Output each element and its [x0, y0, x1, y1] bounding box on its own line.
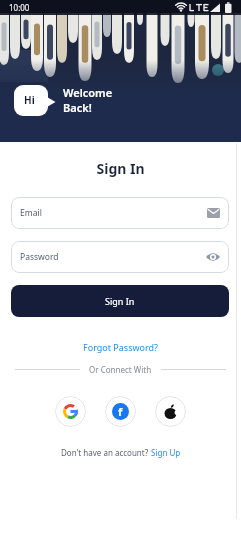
- button[interactable]: [55, 396, 86, 427]
- button[interactable]: f: [105, 396, 136, 427]
- staticText: 10:00: [9, 2, 30, 13]
- button[interactable]: Forgot Password?: [83, 341, 158, 353]
- staticText: Hi: [24, 93, 35, 107]
- button[interactable]: Sign In: [11, 285, 229, 317]
- staticText: Sign In: [105, 295, 135, 307]
- button[interactable]: Password: [11, 241, 229, 273]
- staticText: Or Connect With: [89, 364, 152, 375]
- staticText: Back!: [63, 100, 92, 115]
- button[interactable]: Sign Up: [151, 447, 181, 458]
- staticText: Welcome: [63, 85, 113, 100]
- staticText: f: [118, 404, 123, 419]
- staticText: Password: [20, 251, 59, 263]
- staticText: Don't have an account?: [61, 447, 151, 458]
- staticText: Sign In: [0, 159, 241, 178]
- button[interactable]: [155, 396, 186, 427]
- button[interactable]: Email: [11, 197, 229, 229]
- staticText: Email: [20, 207, 42, 219]
